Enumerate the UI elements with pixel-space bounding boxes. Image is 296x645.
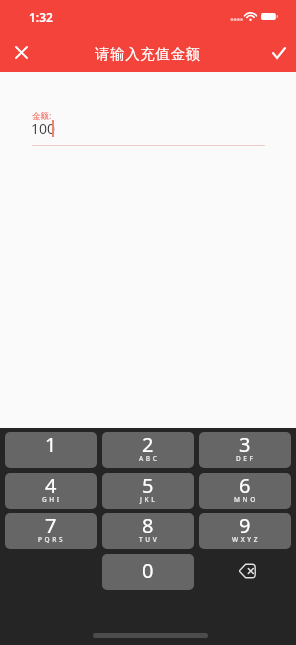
staticText: JKL xyxy=(140,495,158,504)
button[interactable]: Backspace xyxy=(199,554,291,590)
staticText: DEF xyxy=(236,454,256,463)
staticText: 4 xyxy=(45,473,57,499)
staticText: 8 xyxy=(142,513,154,539)
button[interactable]: 5 xyxy=(102,473,194,509)
button[interactable]: 2 xyxy=(102,432,194,468)
staticText: ABC xyxy=(139,454,160,463)
button[interactable]: 6 xyxy=(199,473,291,509)
button[interactable]: 8 xyxy=(102,513,194,549)
staticText: 100 xyxy=(31,119,56,138)
staticText: 9 xyxy=(239,513,251,539)
staticText: 请输入充值金额 xyxy=(95,45,201,63)
staticText: 6 xyxy=(239,473,251,499)
button[interactable]: 9 xyxy=(199,513,291,549)
button[interactable]: Confirm xyxy=(264,38,293,67)
button[interactable]: 7 xyxy=(5,513,97,549)
button[interactable]: 0 xyxy=(102,554,194,590)
button[interactable]: 1 xyxy=(5,432,97,468)
staticText: WXYZ xyxy=(232,535,261,544)
staticText: 金额: xyxy=(32,110,52,122)
button[interactable]: 4 xyxy=(5,473,97,509)
staticText: 7 xyxy=(45,513,57,539)
staticText: 1:32 xyxy=(29,9,53,25)
button[interactable]: Close xyxy=(7,38,36,67)
staticText: MNO xyxy=(234,495,258,504)
staticText: 1 xyxy=(45,432,57,458)
staticText: 5 xyxy=(142,473,154,499)
staticText: 0 xyxy=(142,557,154,584)
staticText: GHI xyxy=(42,495,62,504)
staticText: 2 xyxy=(142,432,154,458)
button[interactable]: 3 xyxy=(199,432,291,468)
staticText: TUV xyxy=(139,535,160,544)
staticText: 3 xyxy=(239,432,251,458)
staticText: PQRS xyxy=(38,535,66,544)
